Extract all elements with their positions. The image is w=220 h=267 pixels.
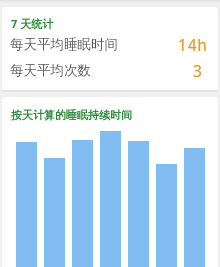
button[interactable]: 每天平均睡眠时间 xyxy=(2,32,218,57)
staticText: 7 天统计 xyxy=(11,16,54,31)
button[interactable]: 每天平均次数 xyxy=(2,58,218,83)
staticText: 按天计算的睡眠持续时间 xyxy=(11,108,132,122)
staticText: 每天平均睡眠时间 xyxy=(10,36,118,53)
staticText: 每天平均次数 xyxy=(10,62,91,79)
staticText: 14h xyxy=(178,34,208,55)
staticText: 3 xyxy=(193,60,202,81)
